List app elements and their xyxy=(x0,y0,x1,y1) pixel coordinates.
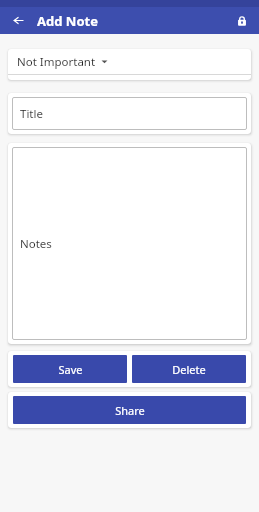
button[interactable]: Title xyxy=(12,97,247,130)
button[interactable]: Save xyxy=(13,355,127,383)
button[interactable]: Back xyxy=(8,10,29,31)
staticText: Save xyxy=(58,362,83,377)
button[interactable]: Notes xyxy=(12,147,247,340)
staticText: Notes xyxy=(20,236,52,252)
staticText: Not Important xyxy=(17,54,96,70)
button[interactable]: Not Important xyxy=(8,49,251,80)
staticText: Title xyxy=(20,106,43,122)
staticText: Add Note xyxy=(37,12,98,30)
button[interactable]: Lock note xyxy=(231,10,253,32)
staticText: Delete xyxy=(172,362,206,377)
button[interactable]: Delete xyxy=(132,355,246,383)
button[interactable]: Share xyxy=(13,396,246,424)
staticText: Share xyxy=(115,403,145,418)
